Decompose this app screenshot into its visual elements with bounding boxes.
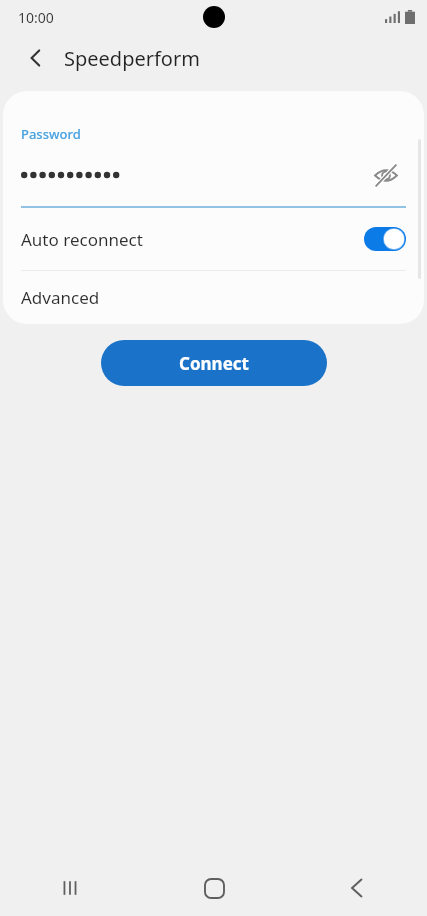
staticText: Auto reconnect xyxy=(21,228,364,251)
staticText: Connect xyxy=(179,352,249,375)
button[interactable]: Home xyxy=(143,860,285,916)
button[interactable]: Back xyxy=(285,860,427,916)
staticText: Speedperform xyxy=(64,45,200,72)
button[interactable]: Back xyxy=(14,36,58,80)
button[interactable]: Auto reconnect xyxy=(3,208,424,270)
button[interactable]: Password xyxy=(3,91,424,208)
staticText: Password xyxy=(21,125,81,143)
button[interactable]: Hide password xyxy=(366,155,406,195)
staticText: Advanced xyxy=(21,286,100,309)
button[interactable]: Recent apps xyxy=(0,860,143,916)
button[interactable]: Connect xyxy=(101,340,327,386)
staticText: 10:00 xyxy=(18,8,54,27)
button[interactable]: Advanced xyxy=(3,271,424,324)
other: Auto reconnect toggle xyxy=(364,227,406,251)
